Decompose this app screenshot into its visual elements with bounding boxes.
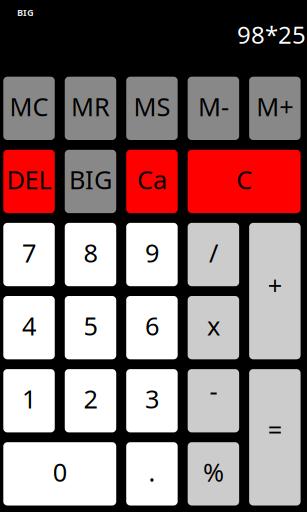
staticText: DEL [6, 163, 51, 196]
button[interactable]: Ca [126, 150, 178, 213]
staticText: 7 [22, 236, 36, 269]
staticText: MC [9, 89, 48, 123]
button[interactable]: 6 [126, 296, 178, 359]
button[interactable]: 2 [65, 369, 116, 432]
staticText: 6 [145, 309, 159, 342]
staticText: 9 [145, 236, 159, 269]
button[interactable]: 0 [3, 442, 116, 505]
staticText: / [209, 236, 218, 269]
staticText: 98*25 [237, 19, 306, 50]
staticText: MR [71, 89, 110, 123]
staticText: . [148, 455, 155, 489]
staticText: M- [198, 89, 229, 123]
button[interactable]: = [249, 369, 301, 505]
staticText: C [236, 163, 252, 196]
staticText: = [268, 413, 282, 446]
button[interactable]: . [126, 442, 178, 505]
staticText: x [207, 309, 220, 342]
button[interactable]: 8 [65, 223, 116, 286]
staticText: 5 [83, 309, 97, 342]
staticText: Ca [137, 163, 167, 196]
staticText: 3 [145, 382, 159, 415]
staticText: BIG [17, 6, 34, 19]
button[interactable]: - [188, 369, 239, 432]
staticText: MS [133, 89, 170, 123]
button[interactable]: BIG [65, 150, 116, 213]
button[interactable]: MC [3, 77, 55, 140]
button[interactable]: 7 [3, 223, 55, 286]
staticText: + [268, 268, 282, 302]
button[interactable]: 1 [3, 369, 55, 432]
button[interactable]: M+ [249, 77, 301, 140]
button[interactable]: % [188, 442, 239, 505]
staticText: M+ [256, 89, 293, 123]
button[interactable]: DEL [3, 150, 55, 213]
button[interactable]: + [249, 223, 301, 359]
button[interactable]: 9 [126, 223, 178, 286]
button[interactable]: M- [188, 77, 239, 140]
button[interactable]: 4 [3, 296, 55, 359]
staticText: - [209, 374, 217, 407]
staticText: 1 [22, 382, 36, 415]
button[interactable]: / [188, 223, 239, 286]
staticText: % [203, 455, 224, 489]
button[interactable]: MS [126, 77, 178, 140]
staticText: 8 [83, 236, 97, 269]
button[interactable]: x [188, 296, 239, 359]
staticText: BIG [69, 163, 112, 196]
button[interactable]: C [188, 150, 301, 213]
button[interactable]: 5 [65, 296, 116, 359]
button[interactable]: MR [65, 77, 116, 140]
staticText: 2 [83, 382, 97, 415]
staticText: 4 [22, 309, 36, 342]
staticText: 0 [53, 455, 67, 489]
button[interactable]: 3 [126, 369, 178, 432]
